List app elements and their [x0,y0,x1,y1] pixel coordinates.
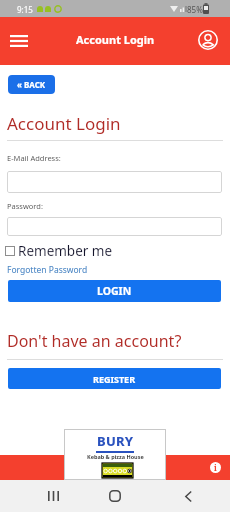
button[interactable]: « BACK [8,75,55,94]
staticText: 85% [187,4,203,15]
staticText: « BACK [17,79,46,90]
staticText: Account Login [7,112,121,135]
button[interactable]: i [210,462,221,473]
staticText: Kebab & pizza House [87,453,144,460]
staticText: REGISTER [93,373,136,385]
button[interactable] [38,481,68,511]
button[interactable] [173,481,203,511]
staticText: E-Mail Address: [7,153,61,163]
button[interactable] [196,28,220,52]
button[interactable] [2,25,36,57]
staticText: BURY [97,432,134,450]
staticText: Remember me [18,242,113,260]
button[interactable] [100,481,130,511]
staticText: Password: [7,201,43,211]
button[interactable]: Remember me [5,242,113,260]
button[interactable]: BURY [64,429,166,480]
staticText: Don't have an account? [7,330,182,352]
button[interactable] [7,171,222,193]
button[interactable]: REGISTER [8,368,221,389]
staticText: 9:15 [17,4,33,15]
button[interactable] [7,217,222,236]
button[interactable]: LOGIN [8,280,221,302]
button[interactable]: Forgotten Password [7,264,88,276]
staticText: LOGIN [97,284,132,298]
staticText: Account Login [76,32,155,47]
staticText: i [214,462,217,473]
